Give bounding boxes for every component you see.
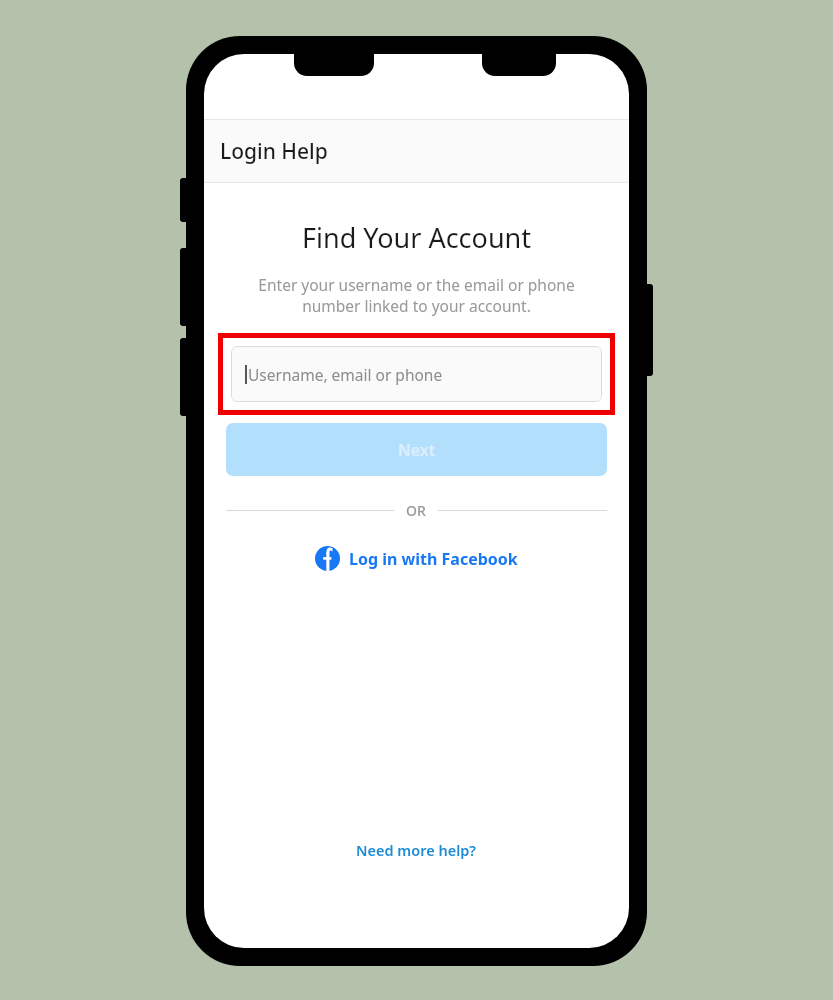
staticText: Find Your Account <box>204 219 629 256</box>
staticText: Enter your username or the email or phon… <box>224 274 609 317</box>
staticText: OR <box>406 501 426 520</box>
button[interactable]: Next <box>226 423 607 476</box>
staticText: Need more help? <box>356 840 477 860</box>
staticText: Next <box>398 439 436 461</box>
button[interactable]: Username, email or phone <box>231 346 602 402</box>
staticText: Username, email or phone <box>248 364 443 385</box>
other: Facebook <box>315 546 340 571</box>
staticText: Log in with Facebook <box>349 548 518 570</box>
button[interactable]: Need more help? <box>204 832 629 868</box>
staticText: Login Help <box>220 137 328 166</box>
button[interactable]: Facebook <box>204 540 629 577</box>
